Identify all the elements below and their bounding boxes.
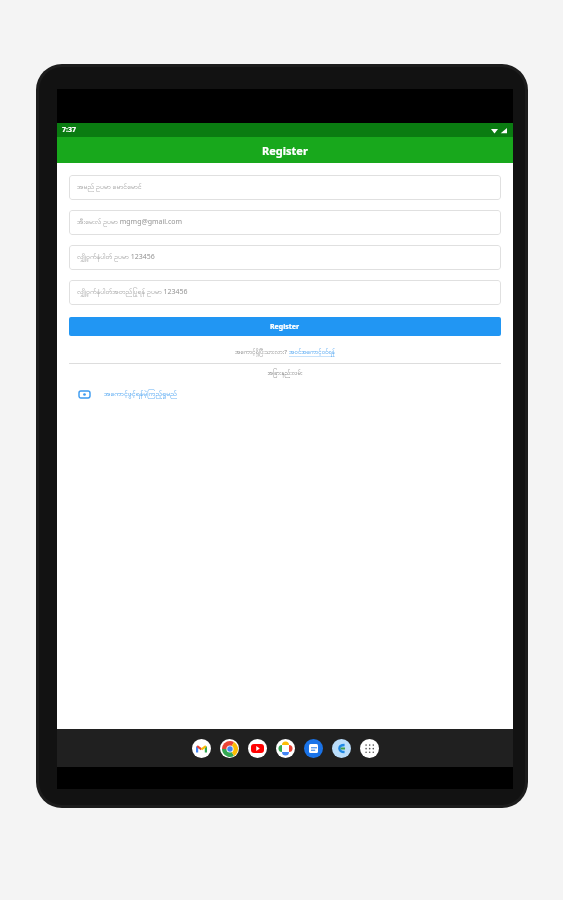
staticText: အမည် ဥပမာ မောင်မောင်	[77, 182, 142, 193]
staticText: လျှို့ဝှက်နံပါတ် ဥပမာ 123456	[77, 252, 155, 263]
staticText: Register	[270, 322, 300, 332]
button[interactable]: အဝင်အကောင့်ဝင်ရန်	[289, 348, 335, 357]
staticText: အီးမေးလ် ဥပမာ mgmg@gmail.com	[77, 217, 183, 228]
button[interactable]: Register	[69, 317, 501, 336]
button[interactable]: All apps	[360, 739, 379, 758]
other: Browse as guest	[79, 390, 90, 399]
button[interactable]: အီးမေးလ် ဥပမာ mgmg@gmail.com	[69, 210, 501, 235]
staticText: 7:37	[62, 125, 76, 135]
staticText: အကောင့်ရှိပြီးသားလား?	[235, 348, 289, 357]
button[interactable]: Gmail	[192, 739, 211, 758]
button[interactable]: Messages	[304, 739, 323, 758]
button[interactable]: YouTube	[248, 739, 267, 758]
button[interactable]: အမည် ဥပမာ မောင်မောင်	[69, 175, 501, 200]
button[interactable]: လျှို့ဝှက်နံပါတ် ဥပမာ 123456	[69, 245, 501, 270]
button[interactable]: App	[332, 739, 351, 758]
staticText: အကောင့်ဖွင့်ရန်မဲ့ကြည့်ရှုမည်	[104, 389, 177, 399]
staticText: အခြားနည်းလမ်း	[69, 369, 501, 378]
button[interactable]: Google Photos	[276, 739, 295, 758]
button[interactable]: Chrome	[220, 739, 239, 758]
staticText: Register	[262, 143, 308, 158]
staticText: အဝင်အကောင့်ဝင်ရန်	[289, 348, 335, 357]
staticText: လျှို့ဝှက်နံပါတ်အတည်ပြုရန် ဥပမာ 123456	[77, 287, 188, 298]
button[interactable]: လျှို့ဝှက်နံပါတ်အတည်ပြုရန် ဥပမာ 123456	[69, 280, 501, 305]
button[interactable]: Browse as guest	[69, 389, 501, 399]
